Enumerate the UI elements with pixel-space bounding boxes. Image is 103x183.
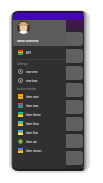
staticText: API	[26, 51, 31, 55]
staticText: item four	[26, 122, 40, 126]
button[interactable]: item three	[13, 110, 66, 119]
button[interactable]	[16, 134, 83, 148]
staticText: row one	[26, 70, 38, 74]
staticText: item five	[26, 131, 39, 135]
staticText: item seven	[26, 149, 42, 153]
button[interactable]	[16, 117, 83, 131]
staticText: item two	[26, 104, 39, 108]
staticText: item three	[26, 113, 41, 117]
button[interactable]: Profile photo	[17, 21, 30, 34]
button[interactable]	[16, 83, 83, 97]
button[interactable]: API	[13, 48, 66, 57]
staticText: Settings	[17, 62, 28, 66]
button[interactable]	[16, 151, 83, 165]
staticText: item six	[26, 140, 37, 144]
button[interactable]: item two	[13, 101, 66, 110]
staticText: item one	[26, 95, 39, 99]
button[interactable]: item one	[13, 92, 66, 101]
button[interactable]	[16, 32, 83, 46]
button[interactable]: row one	[13, 67, 66, 76]
button[interactable]	[16, 66, 83, 80]
button[interactable]: item four	[13, 119, 66, 128]
button[interactable]: item six	[13, 137, 66, 146]
button[interactable]	[16, 100, 83, 114]
staticText: row two	[26, 79, 38, 83]
button[interactable]	[16, 49, 83, 63]
staticText: section header	[17, 87, 37, 91]
button[interactable]: item five	[13, 128, 66, 137]
button[interactable]: item seven	[13, 146, 66, 155]
button[interactable]: row two	[13, 76, 66, 85]
staticText: name surname	[17, 39, 39, 43]
